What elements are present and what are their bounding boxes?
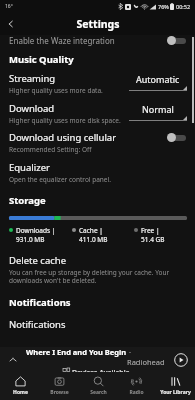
button[interactable]: Download using cellular bbox=[0, 131, 195, 154]
staticText: Downloads | bbox=[16, 226, 56, 235]
staticText: Your Library bbox=[160, 389, 191, 396]
staticText: · Radiohead bbox=[127, 347, 167, 367]
staticText: Where I End and You Begin bbox=[26, 347, 127, 357]
button[interactable]: Radio bbox=[117, 372, 155, 400]
button[interactable]: Back bbox=[0, 13, 22, 35]
button[interactable]: Play bbox=[167, 347, 195, 372]
staticText: 00:52 bbox=[176, 3, 191, 10]
staticText: Download using cellular bbox=[9, 131, 117, 144]
button[interactable]: Browse bbox=[40, 372, 78, 400]
button[interactable]: Expand player bbox=[0, 347, 195, 372]
staticText: Search bbox=[90, 389, 107, 396]
button[interactable]: Equalizer bbox=[0, 161, 195, 184]
staticText: Notifications bbox=[9, 296, 71, 309]
staticText: Music Quality bbox=[9, 53, 74, 66]
staticText: 76% bbox=[158, 3, 169, 10]
staticText: Higher quality uses more disk space. bbox=[9, 116, 121, 125]
staticText: Devices Available bbox=[72, 368, 130, 372]
staticText: 411.0 MB bbox=[79, 235, 108, 244]
staticText: Open the equalizer control panel. bbox=[9, 175, 111, 184]
staticText: 931.0 MB bbox=[16, 235, 45, 244]
button[interactable]: Download bbox=[0, 102, 195, 125]
button[interactable]: Home bbox=[1, 372, 39, 400]
staticText: Download bbox=[9, 102, 55, 115]
staticText: 51.4 GB bbox=[141, 235, 165, 244]
button[interactable]: Enable the Waze integration bbox=[0, 35, 195, 46]
staticText: Notifications bbox=[9, 318, 66, 331]
staticText: Automatic bbox=[136, 73, 180, 85]
staticText: 16° bbox=[5, 3, 13, 10]
staticText: Delete cache bbox=[9, 254, 67, 267]
staticText: Equalizer bbox=[9, 161, 50, 174]
staticText: Streaming bbox=[9, 72, 56, 85]
staticText: Radio bbox=[129, 389, 144, 396]
button[interactable]: Your Library bbox=[156, 372, 194, 400]
staticText: Home bbox=[13, 389, 28, 396]
staticText: You can free up storage by deleting your… bbox=[9, 268, 170, 285]
staticText: Browse bbox=[50, 389, 69, 396]
staticText: Recommended Setting: Off bbox=[9, 145, 92, 154]
staticText: Higher quality uses more data. bbox=[9, 86, 103, 95]
button[interactable]: Delete cache bbox=[0, 254, 195, 285]
staticText: Cache | bbox=[79, 226, 103, 235]
staticText: Settings bbox=[76, 17, 120, 31]
button[interactable]: Expand player bbox=[0, 347, 26, 372]
staticText: Enable the Waze integration bbox=[9, 35, 167, 46]
button[interactable]: Streaming bbox=[0, 72, 195, 95]
staticText: Normal bbox=[142, 103, 174, 115]
button[interactable]: Search bbox=[79, 372, 117, 400]
staticText: Free | bbox=[141, 226, 160, 235]
staticText: Storage bbox=[9, 194, 46, 207]
